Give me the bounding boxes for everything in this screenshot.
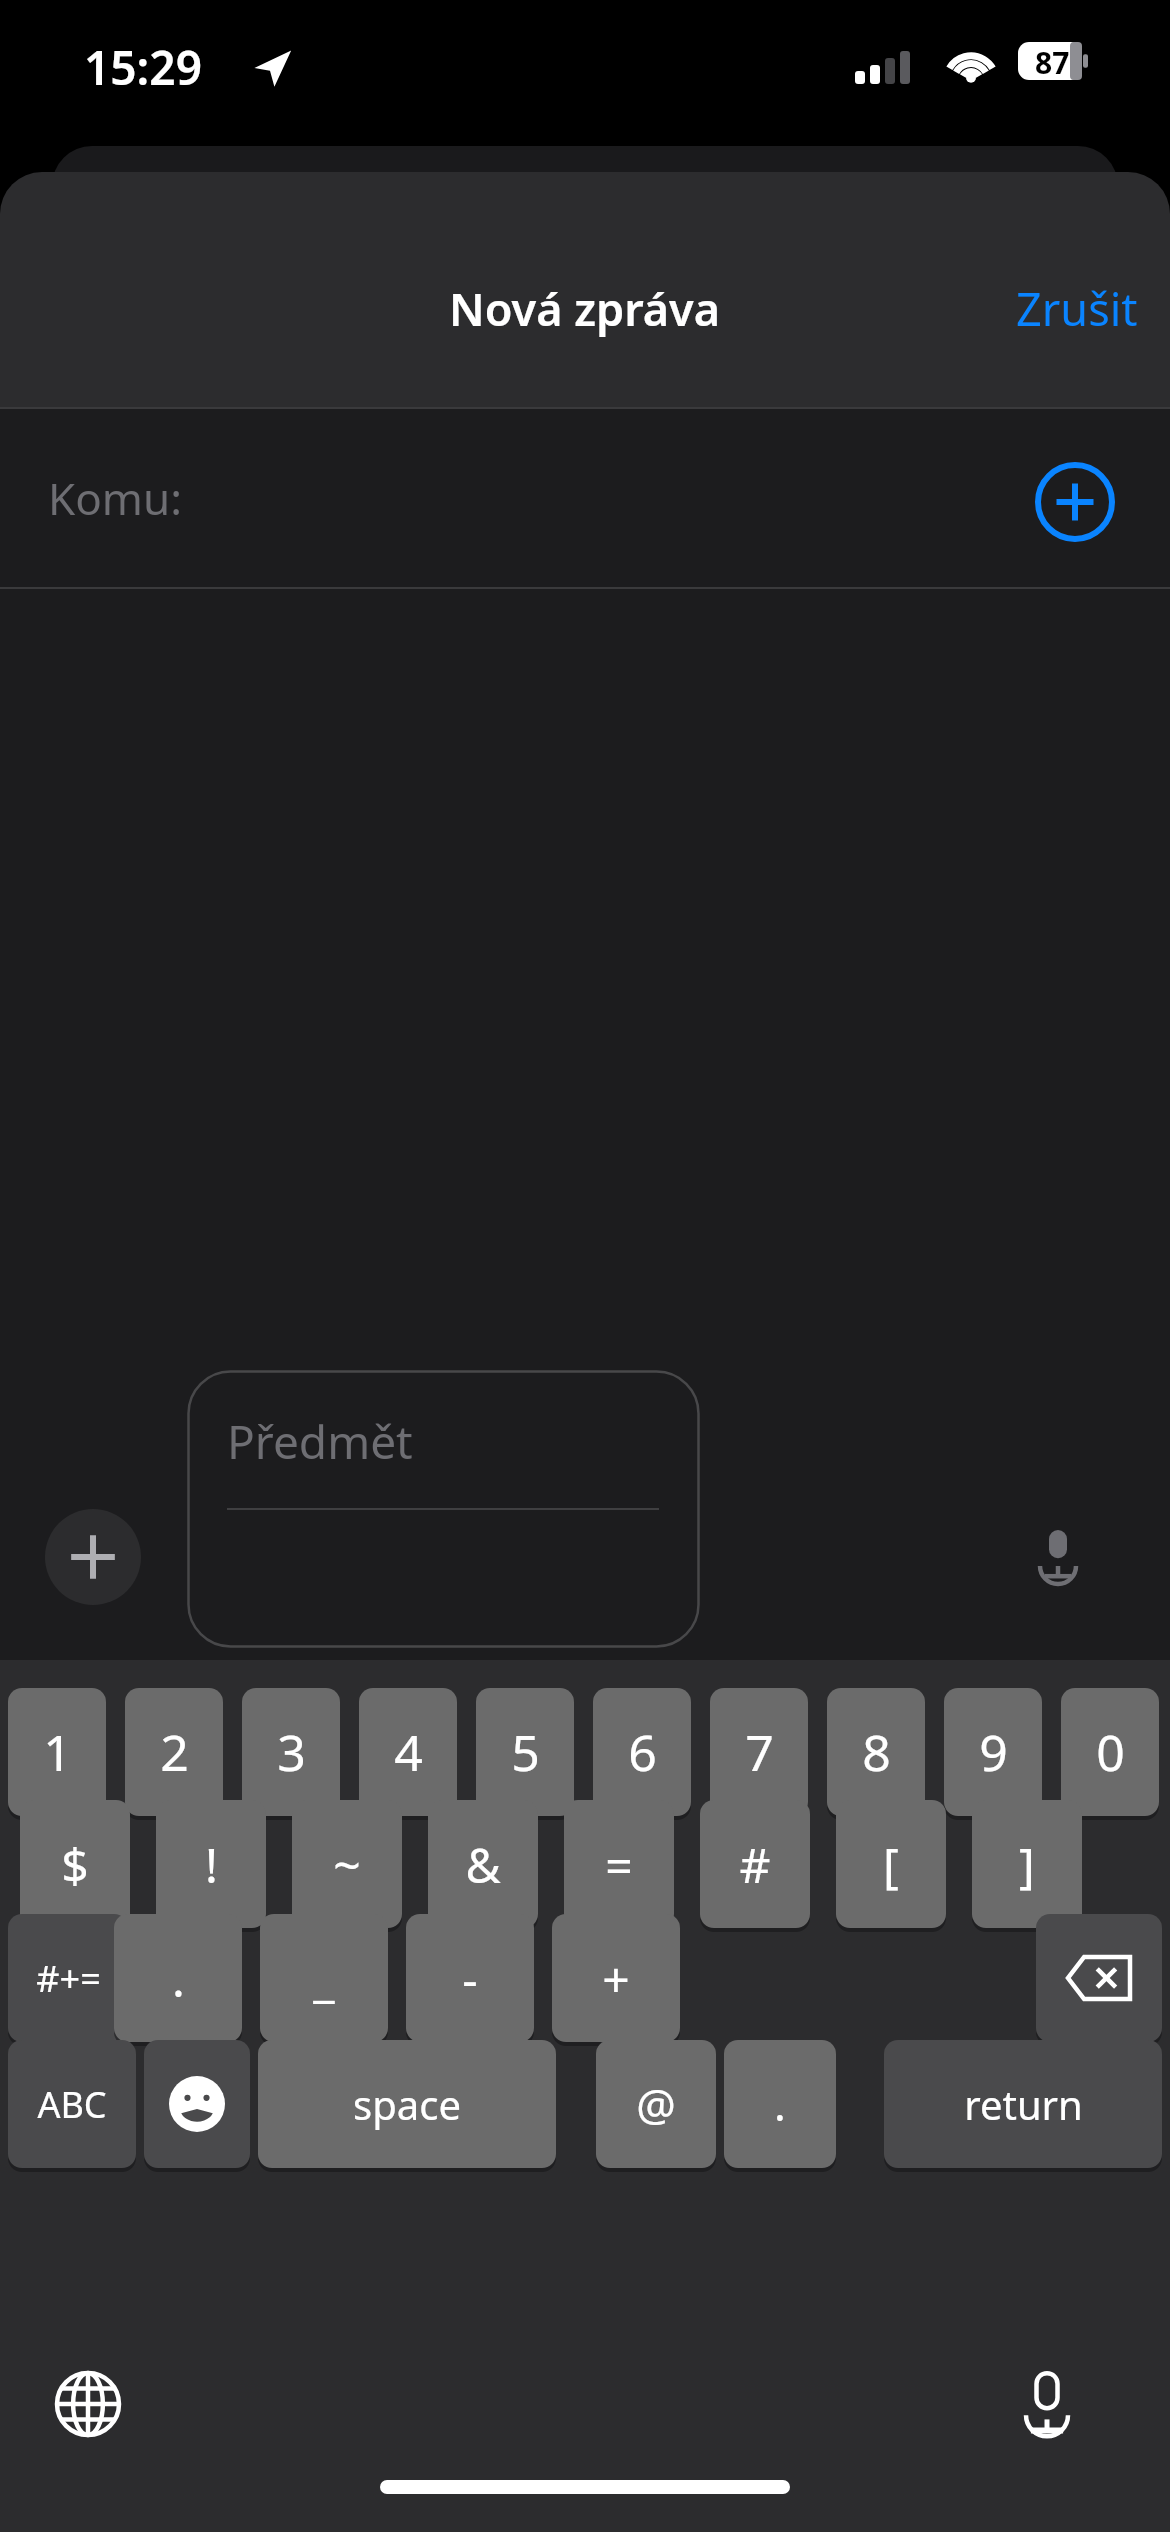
staticText: # [739, 1832, 771, 1897]
staticText: [ [883, 1832, 899, 1897]
button[interactable]: . [114, 1914, 242, 2042]
button[interactable]: _ [260, 1914, 388, 2042]
button[interactable]: Přidat kontakt [1028, 455, 1122, 549]
staticText: & [465, 1832, 501, 1897]
button[interactable]: [ [836, 1800, 946, 1928]
button[interactable]: Zrušit [984, 264, 1170, 353]
staticText: 5 [511, 1718, 540, 1786]
staticText: . [774, 2074, 786, 2134]
staticText: space [353, 2077, 461, 2131]
staticText: _ [313, 1946, 335, 2011]
staticText: Komu: [48, 468, 182, 528]
button[interactable]: ] [972, 1800, 1082, 1928]
staticText: = [605, 1832, 633, 1897]
button[interactable]: ~ [292, 1800, 402, 1928]
staticText: 6 [628, 1718, 657, 1786]
button[interactable]: ! [156, 1800, 266, 1928]
button[interactable]: - [406, 1914, 534, 2042]
button[interactable]: return [884, 2040, 1162, 2168]
staticText: $ [61, 1832, 89, 1897]
staticText: 87 [1035, 42, 1070, 80]
button[interactable]: 8 [827, 1688, 925, 1816]
button[interactable]: 9 [944, 1688, 1042, 1816]
staticText: 7 [745, 1718, 774, 1786]
staticText: - [462, 1946, 478, 2011]
button[interactable]: 7 [710, 1688, 808, 1816]
button[interactable]: Diktovat [1005, 2362, 1089, 2446]
button[interactable]: 0 [1061, 1688, 1159, 1816]
button[interactable]: Emodži [144, 2040, 250, 2168]
staticText: Zrušit [1016, 278, 1138, 339]
button[interactable]: Komu: [0, 409, 1170, 587]
button[interactable]: & [428, 1800, 538, 1928]
staticText: ~ [333, 1832, 361, 1897]
button[interactable]: ABC [8, 2040, 136, 2168]
staticText: 0 [1096, 1718, 1125, 1786]
button[interactable]: 1 [8, 1688, 106, 1816]
staticText: 3 [277, 1718, 306, 1786]
staticText: 15:29 [84, 36, 202, 99]
staticText: . [172, 1946, 185, 2011]
button[interactable]: 3 [242, 1688, 340, 1816]
button[interactable]: 4 [359, 1688, 457, 1816]
button[interactable]: 2 [125, 1688, 223, 1816]
staticText: ABC [37, 2080, 107, 2129]
button[interactable]: . [724, 2040, 836, 2168]
button[interactable]: Přílohy [45, 1509, 141, 1605]
button[interactable]: 5 [476, 1688, 574, 1816]
button[interactable]: 6 [593, 1688, 691, 1816]
staticText: 1 [43, 1718, 72, 1786]
button[interactable] [187, 1370, 700, 1648]
staticText: 2 [160, 1718, 189, 1786]
button[interactable]: Změnit jazyk [46, 2362, 130, 2446]
staticText: + [602, 1946, 630, 2011]
staticText: 8 [862, 1718, 891, 1786]
button[interactable]: $ [20, 1800, 130, 1928]
staticText: ] [1019, 1832, 1035, 1897]
staticText: ! [205, 1832, 218, 1897]
staticText: 9 [979, 1718, 1008, 1786]
button[interactable]: space [258, 2040, 556, 2168]
button[interactable]: + [552, 1914, 680, 2042]
button[interactable]: = [564, 1800, 674, 1928]
button[interactable]: #+= [8, 1914, 128, 2042]
button[interactable]: Smazat [1036, 1914, 1162, 2042]
staticText: #+= [36, 1954, 101, 2003]
button[interactable]: # [700, 1800, 810, 1928]
staticText: Nová zpráva [449, 278, 721, 339]
staticText: Předmět [227, 1410, 413, 1473]
staticText: 4 [394, 1718, 423, 1786]
staticText: return [964, 2077, 1083, 2131]
staticText: @ [636, 2074, 676, 2134]
button[interactable]: @ [596, 2040, 716, 2168]
